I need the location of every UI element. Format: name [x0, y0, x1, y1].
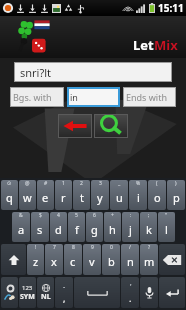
staticText: 123: [22, 284, 33, 292]
staticText: b: [108, 254, 115, 269]
staticText: 5: [75, 212, 78, 219]
button[interactable]: Bgs. with: [10, 87, 64, 107]
staticText: Bgs. with: [13, 91, 52, 103]
staticText: d: [55, 222, 62, 237]
staticText: Let: [133, 36, 154, 54]
staticText: 6: [93, 212, 96, 219]
staticText: k: [146, 222, 152, 237]
button[interactable]: 4: [50, 212, 67, 242]
staticText: +: [111, 212, 114, 219]
staticText: #: [44, 180, 48, 187]
staticText: ": [165, 212, 168, 219]
button[interactable]: %: [129, 180, 147, 210]
staticText: snri?lt: [20, 65, 52, 80]
staticText: :: [130, 212, 132, 219]
button[interactable]: Delete: [159, 244, 185, 275]
staticText: 1: [62, 180, 65, 187]
staticText: ⊙: [7, 180, 12, 186]
staticText: 15:11: [158, 1, 184, 15]
button[interactable]: Symbols: [19, 277, 36, 308]
staticText: z: [33, 254, 39, 269]
staticText: m: [144, 254, 155, 269]
staticText: Ends with: [126, 91, 167, 103]
staticText: v: [89, 254, 95, 269]
staticText: ?: [148, 244, 151, 251]
button[interactable]: ?: [140, 244, 158, 275]
button[interactable]: +: [104, 212, 121, 242]
staticText: 7: [53, 244, 56, 251]
button[interactable]: 2: [73, 180, 90, 210]
button[interactable]: Space: [74, 277, 120, 308]
staticText: n: [127, 254, 134, 269]
button[interactable]: 3: [91, 180, 109, 210]
staticText: y: [97, 190, 103, 205]
button[interactable]: Language: [37, 277, 54, 308]
staticText: 3: [99, 180, 102, 187]
staticText: 9: [91, 244, 94, 251]
staticText: /: [129, 244, 131, 251]
button[interactable]: &: [12, 212, 30, 242]
button[interactable]: Period: [121, 277, 139, 308]
button[interactable]: 1: [55, 180, 72, 210]
staticText: @: [25, 180, 30, 187]
staticText: f: [75, 222, 79, 237]
button[interactable]: 8: [64, 244, 82, 275]
staticText: w: [23, 190, 32, 205]
staticText: ;: [148, 212, 150, 219]
button[interactable]: $: [31, 212, 49, 242]
staticText: ,: [63, 292, 66, 304]
button[interactable]: /: [121, 244, 139, 275]
button[interactable]: Search: [94, 114, 128, 138]
button[interactable]: Voice: [140, 277, 158, 308]
button[interactable]: ): [167, 180, 185, 210]
staticText: c: [70, 254, 76, 269]
button[interactable]: !: [27, 244, 44, 275]
button[interactable]: (: [148, 180, 166, 210]
button[interactable]: ⊙: [1, 180, 18, 210]
staticText: x: [51, 254, 57, 269]
button[interactable]: in: [67, 87, 120, 107]
button[interactable]: #: [37, 180, 54, 210]
staticText: ': [130, 282, 132, 292]
button[interactable]: @: [19, 180, 36, 210]
button[interactable]: 5: [68, 212, 85, 242]
button[interactable]: Settings: [1, 277, 18, 308]
staticText: .: [129, 292, 132, 304]
button[interactable]: ;: [140, 212, 157, 242]
button[interactable]: Comma: [55, 277, 73, 308]
staticText: NL: [41, 292, 51, 302]
staticText: p: [173, 190, 180, 205]
staticText: _: [118, 180, 121, 187]
button[interactable]: snri?lt: [14, 62, 172, 82]
staticText: 4: [57, 212, 60, 219]
button[interactable]: ": [158, 212, 175, 242]
button[interactable]: _: [110, 180, 128, 210]
staticText: Mix: [154, 36, 178, 54]
button[interactable]: 7: [45, 244, 63, 275]
staticText: h: [109, 222, 116, 237]
staticText: q: [6, 190, 13, 205]
button[interactable]: Ends with: [123, 87, 176, 107]
staticText: $: [39, 212, 42, 219]
staticText: u: [116, 190, 123, 205]
staticText: a: [18, 222, 25, 237]
staticText: o: [154, 190, 161, 205]
staticText: in: [70, 91, 78, 103]
staticText: %: [136, 180, 141, 187]
staticText: j: [129, 222, 132, 237]
staticText: ): [175, 180, 177, 187]
staticText: r: [61, 190, 66, 205]
staticText: i: [137, 190, 140, 205]
button[interactable]: 0: [102, 244, 120, 275]
staticText: -: [63, 282, 66, 292]
button[interactable]: Backspace: [58, 114, 92, 138]
button[interactable]: :: [122, 212, 139, 242]
button[interactable]: 6: [86, 212, 103, 242]
staticText: 0: [110, 244, 113, 251]
staticText: (: [156, 180, 158, 187]
staticText: s: [37, 222, 43, 237]
staticText: SYM: [20, 292, 35, 302]
button[interactable]: 9: [83, 244, 101, 275]
button[interactable]: Shift: [1, 244, 26, 275]
button[interactable]: Enter: [159, 277, 185, 308]
